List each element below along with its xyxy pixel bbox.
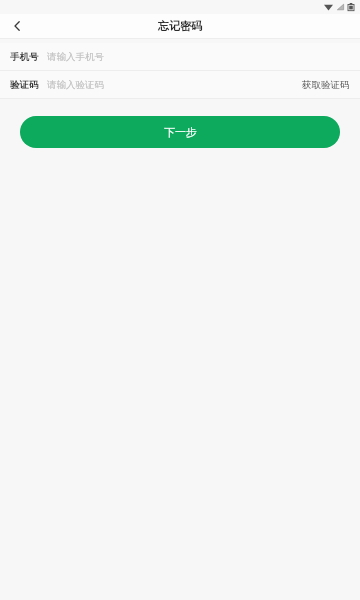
- staticText: 忘记密码: [158, 19, 202, 33]
- button[interactable]: 手机号: [0, 43, 360, 70]
- button[interactable]: 验证码: [0, 71, 360, 98]
- staticText: 下一步: [164, 125, 197, 139]
- staticText: 请输入手机号: [47, 51, 352, 63]
- button[interactable]: 下一步: [20, 116, 340, 148]
- button[interactable]: 获取验证码: [300, 77, 352, 93]
- button[interactable]: Back: [0, 14, 34, 38]
- staticText: 请输入验证码: [47, 79, 300, 91]
- staticText: 验证码: [10, 79, 39, 91]
- staticText: 获取验证码: [302, 79, 350, 91]
- staticText: 手机号: [10, 51, 39, 63]
